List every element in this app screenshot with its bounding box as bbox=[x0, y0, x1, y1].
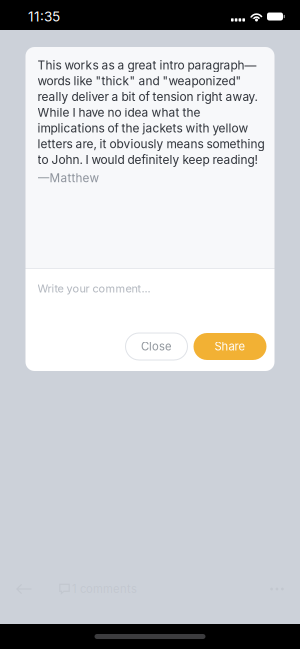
staticText: —Matthew bbox=[37, 171, 99, 185]
button[interactable]: Close bbox=[125, 333, 187, 360]
button[interactable]: Share bbox=[193, 333, 266, 360]
staticText: Close bbox=[141, 340, 172, 353]
staticText: Share bbox=[214, 340, 245, 353]
staticText: This works as a great intro paragraph—wo… bbox=[37, 58, 264, 167]
staticText: 11:35 bbox=[28, 8, 60, 25]
button[interactable]: Write your comment... bbox=[25, 269, 274, 308]
staticText: Write your comment... bbox=[37, 282, 150, 295]
